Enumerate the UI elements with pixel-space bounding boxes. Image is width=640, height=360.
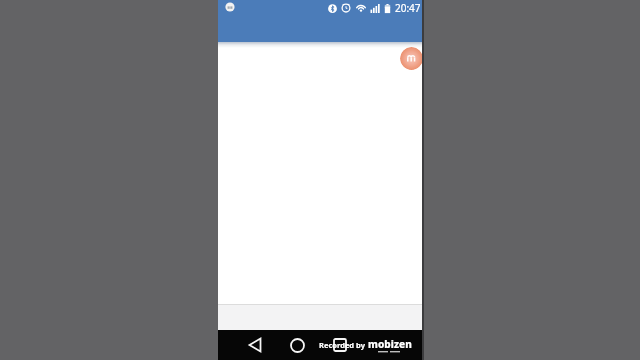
staticText: Recorded by [319,340,365,350]
staticText: mobizen [368,337,412,351]
button[interactable] [243,333,267,357]
button[interactable] [328,333,352,357]
button[interactable] [400,47,422,70]
button[interactable] [285,333,309,357]
staticText: 20:47 [395,1,421,15]
